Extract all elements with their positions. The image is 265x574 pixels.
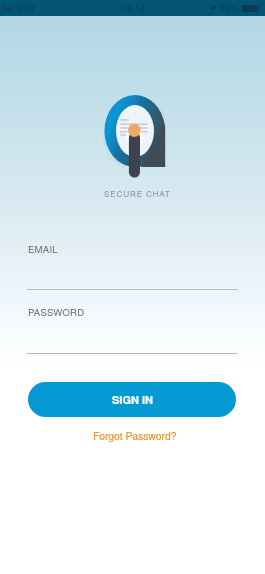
other: Battery — [242, 5, 260, 12]
staticText: 99% — [220, 1, 239, 14]
staticText: SIGN IN — [112, 392, 153, 408]
button[interactable]: SIGN IN — [28, 382, 236, 417]
staticText: SECURE CHAT — [104, 188, 171, 200]
other: Location — [209, 4, 217, 12]
button[interactable] — [27, 295, 238, 355]
staticText: EMAIL — [28, 242, 58, 256]
staticText: Forgot Password? — [93, 428, 177, 443]
button[interactable]: Forgot Password? — [83, 424, 187, 447]
button[interactable] — [27, 232, 238, 291]
staticText: 10.14 — [122, 1, 146, 14]
staticText: No SIM — [3, 1, 35, 14]
staticText: PASSWORD — [28, 305, 85, 319]
